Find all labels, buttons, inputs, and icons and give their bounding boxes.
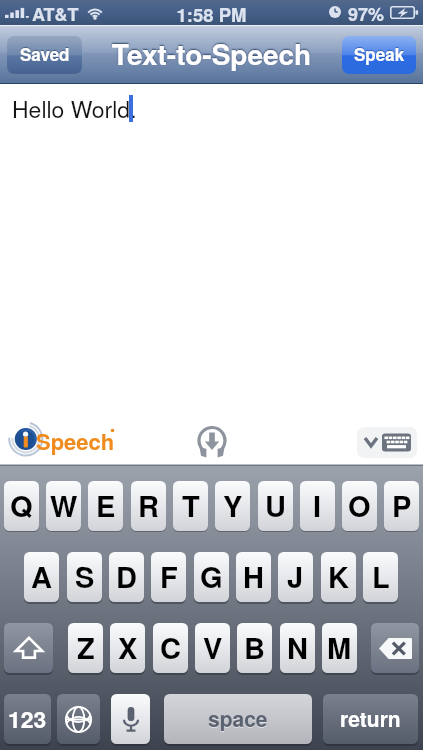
staticText: X: [118, 626, 138, 668]
button[interactable]: S: [67, 552, 102, 602]
button[interactable]: Q: [4, 481, 39, 531]
staticText: Speak: [354, 42, 405, 66]
button[interactable]: A: [24, 552, 59, 602]
staticText: 123: [8, 702, 47, 735]
staticText: Speech: [36, 425, 115, 457]
button[interactable]: R: [131, 481, 166, 531]
button[interactable]: M: [322, 623, 357, 673]
button[interactable]: Backspace: [371, 623, 419, 673]
staticText: S: [75, 555, 95, 597]
staticText: K: [328, 555, 349, 597]
button[interactable]: N: [280, 623, 315, 673]
button[interactable]: D: [109, 552, 144, 602]
staticText: F: [160, 555, 178, 597]
staticText: C: [160, 626, 181, 668]
button[interactable]: F: [151, 552, 186, 602]
staticText: G: [200, 555, 223, 597]
staticText: Text-to-Speech: [0, 33, 423, 73]
staticText: L: [372, 555, 390, 597]
button[interactable]: T: [173, 481, 208, 531]
button[interactable]: Saved: [7, 36, 82, 74]
button[interactable]: I: [300, 481, 335, 531]
staticText: J: [287, 555, 304, 597]
staticText: N: [287, 626, 308, 668]
button[interactable]: P: [384, 481, 419, 531]
button[interactable]: K: [321, 552, 356, 602]
button[interactable]: H: [236, 552, 271, 602]
button[interactable]: Download audio: [196, 424, 228, 459]
button[interactable]: J: [278, 552, 313, 602]
staticText: P: [392, 484, 412, 526]
button[interactable]: B: [237, 623, 272, 673]
button[interactable]: space: [164, 694, 312, 744]
button[interactable]: Z: [68, 623, 103, 673]
staticText: H: [243, 555, 264, 597]
staticText: Hello World.: [12, 92, 137, 125]
staticText: R: [138, 484, 159, 526]
button[interactable]: Speak: [342, 36, 416, 74]
staticText: Saved: [20, 42, 70, 66]
staticText: U: [265, 484, 286, 526]
staticText: E: [96, 484, 116, 526]
staticText: I: [313, 484, 322, 526]
button[interactable]: X: [110, 623, 145, 673]
staticText: D: [116, 555, 137, 597]
button[interactable]: E: [88, 481, 123, 531]
button[interactable]: Dictate: [111, 694, 150, 744]
staticText: M: [327, 626, 352, 668]
staticText: W: [50, 484, 78, 526]
button[interactable]: G: [194, 552, 229, 602]
button[interactable]: W: [46, 481, 81, 531]
staticText: Z: [77, 626, 95, 668]
staticText: B: [244, 626, 265, 668]
staticText: return: [340, 703, 401, 733]
staticText: V: [203, 626, 223, 668]
button[interactable]: C: [153, 623, 188, 673]
staticText: T: [182, 484, 200, 526]
button[interactable]: 123: [4, 694, 51, 744]
button[interactable]: Next keyboard: [57, 694, 100, 744]
staticText: 1:58 PM: [0, 1, 423, 26]
button[interactable]: Speech: [6, 421, 108, 463]
staticText: 97%: [348, 1, 385, 26]
button[interactable]: return: [323, 694, 418, 744]
button[interactable]: O: [342, 481, 377, 531]
staticText: Y: [223, 484, 243, 526]
staticText: AT&T: [32, 1, 79, 26]
staticText: Q: [10, 484, 33, 526]
button[interactable]: Hello World.: [0, 84, 423, 419]
staticText: O: [348, 484, 371, 526]
button[interactable]: V: [195, 623, 230, 673]
button[interactable]: Hide keyboard: [357, 427, 417, 458]
staticText: A: [31, 555, 52, 597]
button[interactable]: Shift: [4, 623, 53, 673]
button[interactable]: Y: [215, 481, 250, 531]
button[interactable]: U: [258, 481, 293, 531]
staticText: space: [208, 703, 268, 733]
button[interactable]: L: [363, 552, 398, 602]
